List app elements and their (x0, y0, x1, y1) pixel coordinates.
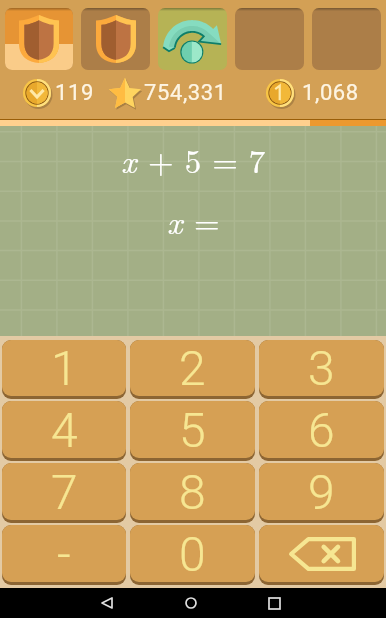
button[interactable] (5, 8, 73, 70)
staticText: 8 (179, 464, 206, 520)
button[interactable]: Back (89, 588, 125, 618)
button[interactable]: 8 (130, 463, 255, 520)
staticText: 7 (51, 464, 78, 520)
staticText: 1,068 (302, 80, 359, 106)
button[interactable]: 9 (259, 463, 384, 520)
button[interactable]: Home (173, 588, 209, 618)
staticText: - (57, 526, 71, 582)
staticText: 2 (179, 340, 206, 396)
other: Backspace (288, 537, 356, 571)
button[interactable]: 0 (130, 525, 255, 582)
staticText: x (121, 136, 137, 183)
staticText: 119 (55, 80, 94, 106)
button[interactable]: 6 (259, 401, 384, 458)
button[interactable] (312, 8, 381, 70)
button[interactable]: 4 (2, 401, 126, 458)
button[interactable]: 5 (130, 401, 255, 458)
button[interactable]: 1 (2, 340, 126, 396)
staticText: 754,331 (144, 80, 227, 106)
staticText: 6 (308, 402, 335, 458)
button[interactable]: 2 (130, 340, 255, 396)
staticText: 1 (51, 340, 78, 396)
button[interactable]: Backspace (259, 525, 384, 582)
staticText: + 5 = 7 (137, 136, 266, 183)
button[interactable]: 7 (2, 463, 126, 520)
staticText: 4 (51, 402, 78, 458)
button[interactable] (81, 8, 150, 70)
button[interactable]: 3 (259, 340, 384, 396)
staticText: 3 (308, 340, 335, 396)
staticText: 9 (308, 464, 335, 520)
staticText: 0 (179, 526, 206, 582)
button[interactable]: - (2, 525, 126, 582)
button[interactable] (158, 8, 227, 70)
button[interactable]: Recents (256, 588, 292, 618)
staticText: x (167, 197, 183, 244)
staticText: = (183, 197, 220, 244)
button[interactable] (235, 8, 304, 70)
staticText: 5 (179, 402, 206, 458)
